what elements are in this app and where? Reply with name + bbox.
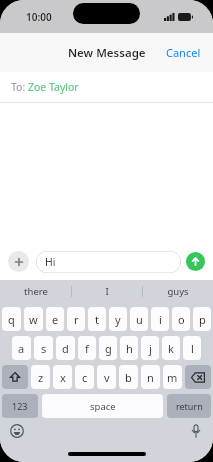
staticText: s	[41, 341, 47, 356]
staticText: New Message	[68, 45, 146, 61]
staticText: w	[29, 312, 38, 327]
staticText: r	[74, 312, 79, 327]
staticText: o	[178, 312, 185, 327]
staticText: d	[62, 341, 69, 356]
button[interactable]: c	[75, 365, 94, 389]
button[interactable]: Backspace	[185, 365, 211, 389]
button[interactable]: i	[151, 307, 169, 331]
button[interactable]: l	[183, 336, 201, 360]
button[interactable]: g	[99, 336, 117, 360]
button[interactable]: z	[31, 365, 50, 389]
staticText: p	[199, 312, 206, 327]
staticText: h	[126, 341, 133, 356]
button[interactable]: Emoji	[9, 423, 25, 439]
staticText: space	[90, 400, 116, 413]
button[interactable]: x	[53, 365, 72, 389]
staticText: I	[105, 285, 109, 298]
button[interactable]: d	[56, 336, 75, 360]
button[interactable]: n	[141, 365, 160, 389]
button[interactable]: u	[130, 307, 148, 331]
staticText: m	[167, 370, 178, 385]
staticText: t	[95, 312, 99, 327]
button[interactable]: Shift	[2, 365, 28, 389]
staticText: To:	[11, 80, 28, 94]
button[interactable]: q	[2, 307, 21, 331]
staticText: l	[191, 341, 194, 356]
button[interactable]: j	[141, 336, 159, 360]
button[interactable]: Add attachment	[8, 251, 29, 272]
button[interactable]: Hi	[36, 251, 181, 273]
button[interactable]: r	[67, 307, 85, 331]
staticText: z	[38, 370, 44, 385]
staticText: 10:00	[26, 10, 52, 24]
button[interactable]: s	[34, 336, 53, 360]
button[interactable]: there	[0, 280, 71, 303]
staticText: Hi	[45, 255, 56, 269]
staticText: Zoe Taylor	[28, 80, 79, 94]
button[interactable]: v	[97, 365, 116, 389]
staticText: q	[8, 312, 15, 327]
staticText: v	[104, 370, 110, 385]
staticText: c	[82, 370, 88, 385]
staticText: n	[147, 370, 154, 385]
button[interactable]: Send	[186, 252, 205, 271]
staticText: a	[18, 341, 25, 356]
staticText: f	[85, 341, 89, 356]
staticText: there	[24, 285, 48, 298]
staticText: j	[149, 341, 152, 356]
button[interactable]: Cancel	[154, 37, 213, 68]
button[interactable]: space	[42, 394, 163, 418]
button[interactable]: a	[12, 336, 31, 360]
button[interactable]: return	[167, 394, 211, 418]
button[interactable]: y	[109, 307, 127, 331]
button[interactable]: m	[163, 365, 182, 389]
button[interactable]: 123	[2, 394, 38, 418]
staticText: x	[60, 370, 66, 385]
staticText: e	[52, 312, 59, 327]
staticText: Cancel	[166, 45, 201, 60]
staticText: k	[168, 341, 174, 356]
staticText: b	[125, 370, 132, 385]
staticText: i	[159, 312, 162, 327]
staticText: u	[136, 312, 143, 327]
button[interactable]: t	[88, 307, 106, 331]
staticText: return	[176, 400, 203, 412]
staticText: y	[115, 312, 121, 327]
button[interactable]: f	[78, 336, 96, 360]
staticText: guys	[167, 285, 189, 298]
button[interactable]: I	[72, 280, 142, 303]
staticText: 123	[12, 400, 28, 412]
staticText: g	[105, 341, 112, 356]
button[interactable]: b	[119, 365, 138, 389]
button[interactable]: guys	[143, 280, 213, 303]
button[interactable]: Dictation	[188, 423, 204, 439]
button[interactable]: k	[162, 336, 180, 360]
button[interactable]: p	[193, 307, 211, 331]
button[interactable]: To:	[0, 72, 213, 102]
button[interactable]: o	[172, 307, 190, 331]
button[interactable]: w	[24, 307, 43, 331]
button[interactable]: e	[46, 307, 64, 331]
button[interactable]: h	[120, 336, 138, 360]
